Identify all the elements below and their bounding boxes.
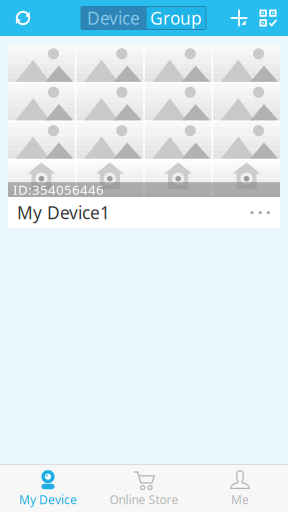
button[interactable]: Group — [146, 7, 205, 29]
button[interactable]: Device — [81, 7, 145, 29]
button[interactable]: Scan QR code — [248, 0, 288, 36]
staticText: Group — [150, 6, 202, 29]
staticText: My Device — [19, 491, 77, 507]
button[interactable]: Refresh — [0, 0, 46, 36]
staticText: Device — [87, 6, 140, 29]
staticText: Online Store — [109, 491, 178, 507]
button[interactable]: Online Store — [96, 465, 192, 512]
button[interactable]: Me — [192, 465, 288, 512]
button[interactable]: My Device1 — [8, 197, 280, 228]
staticText: My Device1 — [17, 201, 110, 224]
staticText: Me — [231, 491, 249, 507]
button[interactable]: Add device — [230, 0, 248, 36]
button[interactable]: My Device — [0, 465, 96, 512]
staticText: ID:354056446 — [13, 181, 104, 198]
